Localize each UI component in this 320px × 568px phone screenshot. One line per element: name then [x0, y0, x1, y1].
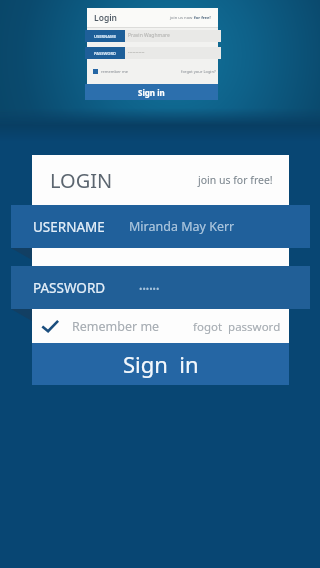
button[interactable]: Sign in [85, 84, 218, 100]
staticText: Pravin Waghmare [128, 32, 170, 39]
staticText: Remember me [72, 318, 160, 335]
staticText: remember me [101, 69, 128, 74]
staticText: USERNAME [33, 218, 105, 236]
button[interactable]: PASSWORD [11, 266, 310, 309]
staticText: •••••• [139, 282, 160, 294]
button[interactable]: USERNAME [11, 205, 310, 248]
staticText: join us now [170, 15, 194, 21]
staticText: ••••••••••• [128, 50, 145, 55]
staticText: PASSWORD [94, 51, 117, 56]
staticText: for free! [194, 15, 211, 21]
staticText: USERNAME [94, 34, 117, 39]
staticText: LOGIN [50, 167, 113, 194]
button[interactable]: remember me [93, 65, 216, 77]
staticText: join us for free! [198, 173, 273, 187]
button[interactable]: Remember me checked [32, 310, 289, 343]
staticText: Sign in [123, 349, 199, 379]
button[interactable]: USERNAME [85, 30, 125, 42]
staticText: fogot password [193, 319, 281, 335]
staticText: PASSWORD [33, 279, 106, 297]
button[interactable]: Sign in [32, 343, 289, 385]
staticText: Sign in [138, 87, 165, 98]
staticText: Miranda May Kerr [129, 218, 235, 235]
button[interactable]: PASSWORD [85, 47, 125, 59]
other: Remember me checked [42, 319, 58, 335]
button[interactable]: LOGIN [32, 155, 289, 205]
button[interactable]: Login [87, 8, 218, 27]
staticText: forgot your Login? [181, 69, 216, 74]
staticText: Login [94, 12, 118, 24]
